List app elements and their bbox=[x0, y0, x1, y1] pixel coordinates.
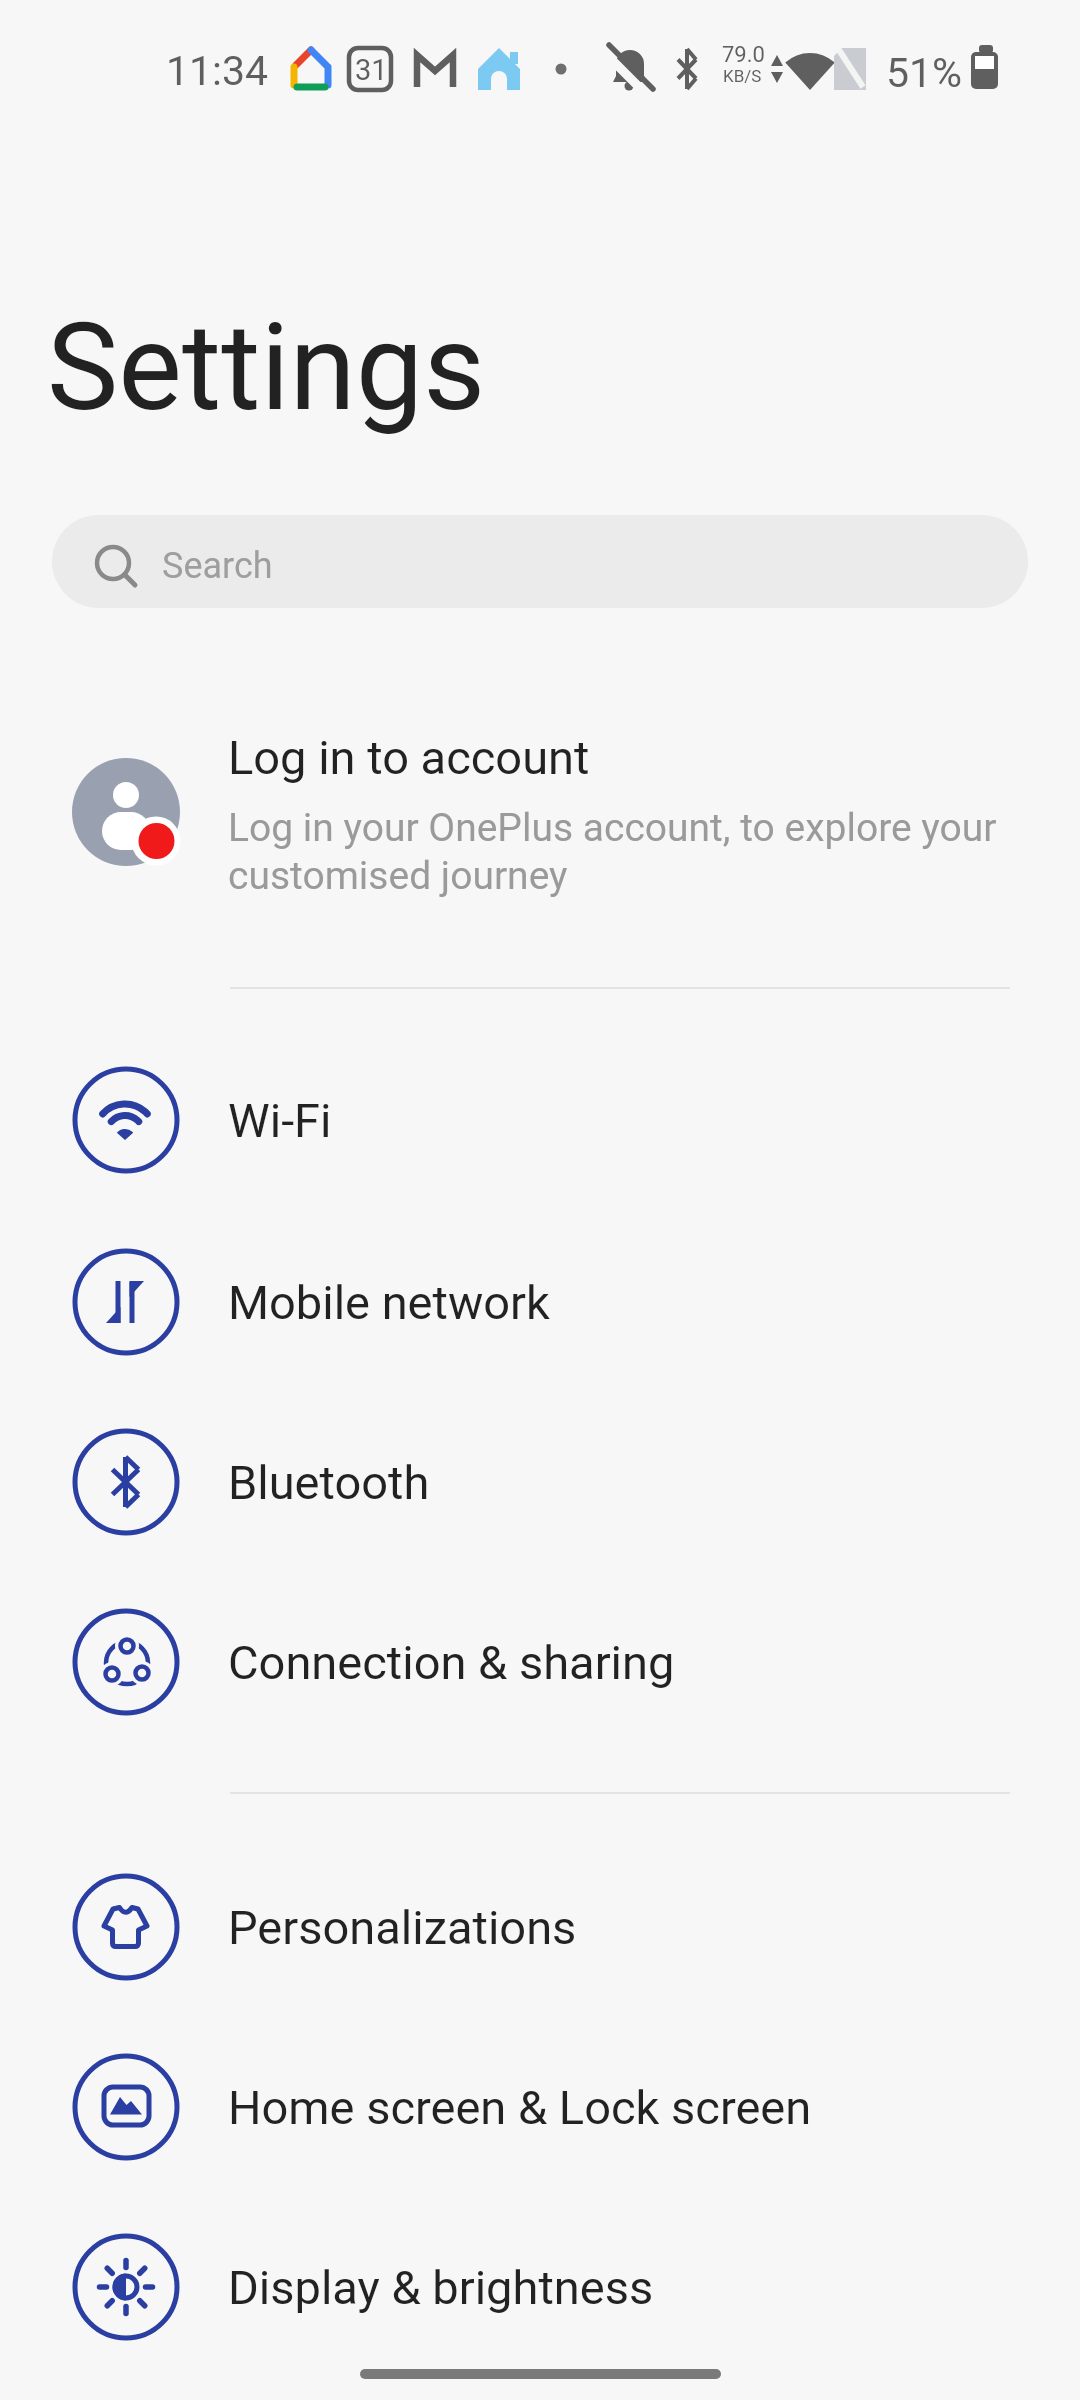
staticText: Wi-Fi bbox=[228, 1093, 332, 1148]
staticText: 51% bbox=[886, 49, 963, 97]
staticText: Personalizations bbox=[228, 1900, 577, 1955]
staticText: Bluetooth bbox=[228, 1455, 430, 1510]
button[interactable]: Display & brightness bbox=[0, 2196, 1080, 2378]
staticText: Display & brightness bbox=[228, 2260, 654, 2315]
button[interactable]: Personalizations bbox=[0, 1836, 1080, 2018]
staticText: 31 bbox=[355, 53, 388, 87]
staticText: KB/S bbox=[723, 66, 762, 86]
staticText: Home screen & Lock screen bbox=[228, 2080, 812, 2135]
staticText: Settings bbox=[47, 298, 486, 439]
staticText: 79.0 bbox=[722, 42, 765, 68]
button[interactable]: Connection & sharing bbox=[0, 1571, 1080, 1753]
button[interactable]: Log in to account bbox=[0, 716, 1080, 966]
staticText: Mobile network bbox=[228, 1275, 550, 1330]
button[interactable]: Wi-Fi bbox=[0, 1029, 1080, 1211]
button[interactable]: Search bbox=[52, 515, 1028, 608]
staticText: Connection & sharing bbox=[228, 1635, 675, 1690]
staticText: Search bbox=[162, 545, 273, 587]
staticText: 11:34 bbox=[166, 47, 269, 95]
staticText: Log in to account bbox=[228, 730, 590, 785]
staticText: Log in your OnePlus account, to explore … bbox=[228, 805, 997, 899]
button[interactable]: Home screen & Lock screen bbox=[0, 2016, 1080, 2198]
button[interactable]: Mobile network bbox=[0, 1211, 1080, 1393]
button[interactable]: Bluetooth bbox=[0, 1391, 1080, 1573]
